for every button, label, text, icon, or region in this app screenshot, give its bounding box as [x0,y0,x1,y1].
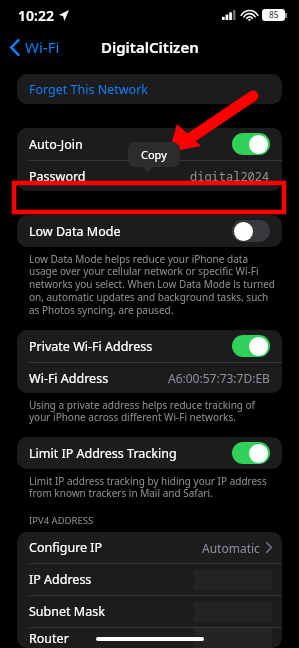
button[interactable]: Private Wi-Fi Address [17,330,282,362]
staticText: Limit IP Address Tracking [29,445,177,462]
button[interactable]: Wi-Fi [0,33,68,61]
staticText: Limit IP address tracking by hiding your… [29,474,276,500]
staticText: 85 [269,9,279,21]
staticText: IP Address [29,571,92,588]
staticText: Forget This Network [29,81,149,98]
button[interactable]: Auto-Join [17,128,282,160]
staticText: Auto-Join [29,136,83,153]
staticText: Router [29,630,69,647]
staticText: IPV4 ADDRESS [29,514,94,527]
staticText: Low Data Mode helps reduce your iPhone d… [29,252,276,317]
button[interactable]: Copy [128,142,180,167]
button[interactable]: Auto-Join toggle [232,133,270,155]
button[interactable]: IP Address [17,564,282,595]
staticText: Wi-Fi [25,37,60,57]
button[interactable]: Forget This Network [17,74,282,104]
staticText: Automatic [202,540,260,556]
staticText: Configure IP [29,539,103,556]
staticText: Copy [141,147,167,162]
staticText: Password [29,168,86,185]
staticText: Wi-Fi Address [29,370,109,387]
button[interactable]: Private Wi-Fi Address toggle [232,335,270,357]
staticText: Using a private address helps reduce tra… [29,398,276,424]
button[interactable]: Limit IP Address Tracking toggle [232,442,270,464]
button[interactable]: Low Data Mode toggle [232,220,270,242]
staticText: 10:22 [18,6,54,25]
button[interactable]: Limit IP Address Tracking [17,437,282,469]
button[interactable]: Configure IP [17,532,282,563]
staticText: DigitalCitizen [101,37,199,57]
staticText: A6:00:57:73:7D:EB [168,370,270,386]
button[interactable]: Router [17,628,282,648]
staticText: Subnet Mask [29,603,105,620]
button[interactable]: Wi-Fi Address [17,363,282,393]
button[interactable]: Password [17,161,282,191]
staticText: Low Data Mode [29,223,121,240]
staticText: digital2024 [190,168,270,184]
button[interactable]: Subnet Mask [17,596,282,627]
staticText: Private Wi-Fi Address [29,338,153,355]
button[interactable]: Low Data Mode [17,215,282,247]
